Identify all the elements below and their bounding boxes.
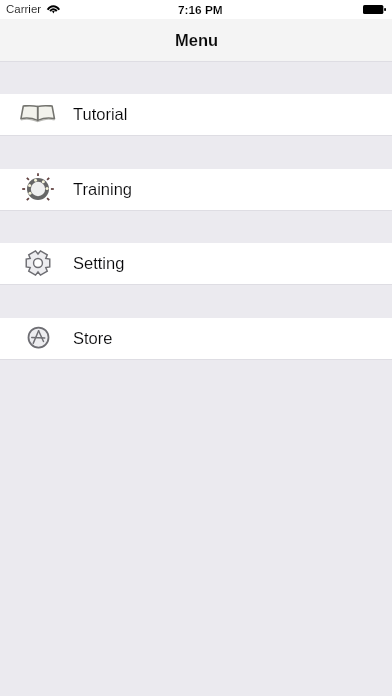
- button[interactable]: Store: [0, 318, 392, 359]
- staticText: Carrier: [6, 3, 42, 16]
- staticText: 7:16 PM: [178, 3, 223, 16]
- staticText: Setting: [73, 254, 125, 272]
- button[interactable]: Setting: [0, 243, 392, 284]
- button[interactable]: Training: [0, 169, 392, 210]
- staticText: Training: [73, 180, 132, 198]
- staticText: Store: [73, 329, 113, 347]
- staticText: Tutorial: [73, 105, 128, 123]
- button[interactable]: Tutorial: [0, 94, 392, 135]
- staticText: Menu: [175, 31, 219, 49]
